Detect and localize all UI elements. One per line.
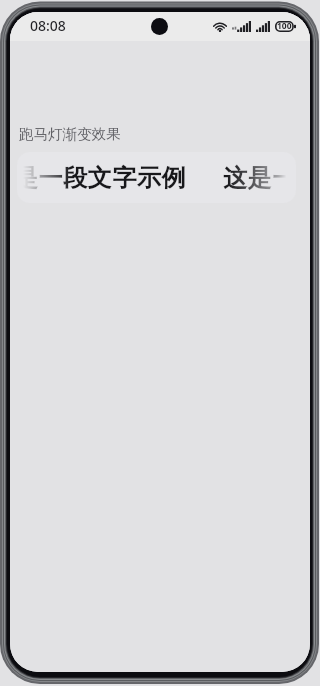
staticText: 是一段文字示例 [17,163,187,193]
button[interactable]: 是一段文字示例 [17,152,296,203]
staticText: 08:08 [30,16,66,35]
staticText: 100 [277,20,292,32]
staticText: 这是一段文字示例 [223,163,293,193]
staticText: 跑马灯渐变效果 [19,125,121,143]
